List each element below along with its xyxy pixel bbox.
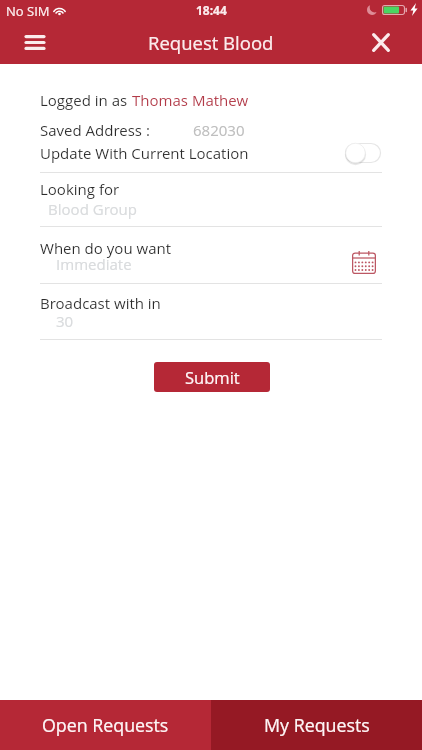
button[interactable]: Open Requests [0, 700, 211, 750]
button[interactable]: Menu [14, 21, 56, 63]
staticText: Thomas Mathew [132, 90, 249, 110]
staticText: Immediate [56, 254, 132, 274]
button[interactable]: Submit [154, 362, 270, 392]
staticText: 18:44 [196, 2, 227, 18]
staticText: Open Requests [42, 713, 169, 737]
staticText: Submit [185, 366, 240, 388]
button[interactable]: My Requests [211, 700, 422, 750]
staticText: Blood Group [48, 199, 137, 219]
staticText: 682030 [193, 120, 245, 140]
staticText: Looking for [40, 179, 120, 199]
button[interactable]: Update with current location [343, 141, 383, 165]
staticText: 30 [56, 311, 74, 331]
staticText: Logged in as [40, 90, 132, 110]
staticText: Request Blood [148, 30, 274, 55]
button[interactable]: Close [360, 21, 402, 63]
staticText: Update With Current Location [40, 143, 249, 163]
staticText: When do you want [40, 238, 171, 258]
staticText: Broadcast with in [40, 293, 161, 313]
staticText: My Requests [264, 713, 370, 737]
button[interactable]: Pick date [352, 251, 382, 281]
staticText: Saved Address : [40, 120, 150, 140]
staticText: No SIM [6, 2, 50, 20]
